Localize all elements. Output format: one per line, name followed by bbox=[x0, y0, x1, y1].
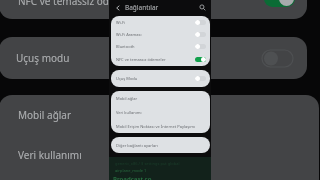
button[interactable]: NFC ve temassız ödemeler bbox=[116, 53, 206, 66]
staticText: Veri kullanımı bbox=[116, 110, 206, 115]
staticText: Bağlantılar bbox=[125, 3, 159, 12]
button[interactable]: Uçuş modu bbox=[0, 37, 307, 79]
button[interactable]: Diğer bağlantı ayarları bbox=[116, 137, 206, 153]
staticText: airplane_mode 1 bbox=[115, 168, 147, 173]
staticText: Mobil Erişim Noktası ve İnternet Paylaşı… bbox=[116, 124, 206, 129]
staticText: Uçuş Modu bbox=[116, 76, 195, 81]
staticText: Broadcast co bbox=[113, 175, 152, 180]
staticText: Veri kullanımı bbox=[18, 148, 82, 162]
button[interactable]: Uçuş Modu bbox=[116, 70, 206, 87]
button[interactable]: Veri kullanımı bbox=[116, 105, 206, 119]
staticText: Wi-Fi Araması bbox=[116, 32, 195, 37]
button[interactable]: Wi-Fi bbox=[116, 16, 206, 28]
staticText: Diğer bağlantı ayarları bbox=[116, 143, 206, 148]
staticText: NFC ve temassız ödemeler bbox=[18, 0, 142, 8]
staticText: Uçuş modu bbox=[16, 51, 70, 65]
staticText: NFC ve temassız ödemeler bbox=[116, 57, 195, 62]
button[interactable]: Wi-Fi Araması bbox=[116, 28, 206, 40]
staticText: Wi-Fi bbox=[116, 20, 195, 25]
staticText: Bluetooth bbox=[116, 44, 195, 49]
button[interactable]: Mobil ağlar bbox=[116, 91, 206, 105]
staticText: Mobil ağlar bbox=[116, 96, 206, 101]
button[interactable]: Mobil Erişim Noktası ve İnternet Paylaşı… bbox=[116, 119, 206, 133]
staticText: generic_x86:/ $ settings put global bbox=[115, 161, 180, 166]
button[interactable]: NFC ve temassız ödemeler bbox=[0, 0, 307, 19]
button[interactable]: Bluetooth bbox=[116, 40, 206, 53]
button[interactable]: Mobil ağlar bbox=[0, 95, 319, 180]
button[interactable]: Search bbox=[198, 3, 207, 12]
button[interactable]: Back bbox=[113, 3, 122, 12]
staticText: Mobil ağlar bbox=[18, 108, 72, 122]
